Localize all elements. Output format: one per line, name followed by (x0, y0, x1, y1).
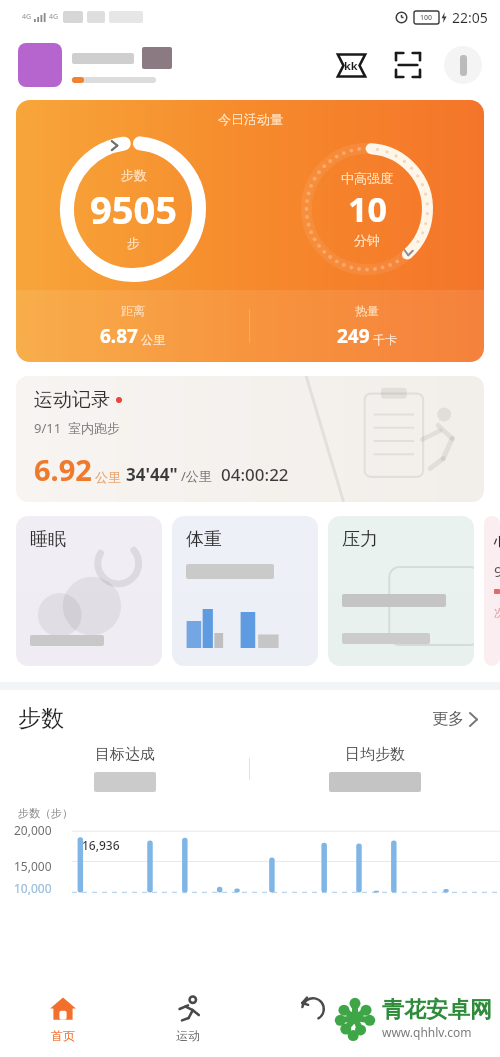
button[interactable]: KK rewards (330, 44, 372, 86)
staticText: 步数 (18, 704, 64, 733)
staticText: 22:05 (452, 8, 488, 27)
button[interactable]: 运动 (125, 979, 250, 1057)
staticText: 热量 (355, 303, 379, 318)
button[interactable]: Account (444, 46, 482, 84)
staticText: 距离 (121, 303, 145, 318)
button[interactable]: 压力 (328, 516, 474, 666)
staticText: 中高强度 (341, 170, 393, 186)
staticText: 04:00:22 (221, 463, 289, 486)
button[interactable]: Profile avatar (18, 43, 62, 87)
staticText: 次 (494, 606, 500, 620)
staticText: /公里 (181, 467, 212, 485)
staticText: 公里 (95, 469, 121, 485)
button[interactable]: 体重 (172, 516, 318, 666)
staticText: 4G (49, 12, 59, 22)
staticText: 运动 (176, 1028, 200, 1043)
button[interactable]: More (250, 979, 375, 1057)
staticText: 6.87 (100, 323, 138, 349)
staticText: 9/11 室内跑步 (34, 419, 120, 437)
staticText: 4G (22, 12, 32, 22)
staticText: 249 (337, 323, 370, 349)
staticText: 100 (420, 13, 433, 23)
staticText: 更多 (432, 709, 464, 729)
staticText: 首页 (51, 1028, 75, 1043)
button[interactable]: Scan (388, 45, 428, 85)
staticText: kk (344, 58, 358, 73)
staticText: 千卡 (373, 332, 397, 347)
staticText: 步数 (121, 167, 147, 183)
staticText: 分钟 (354, 232, 380, 248)
staticText: 34'44" (126, 463, 178, 486)
staticText: 目标达成 (95, 745, 155, 764)
staticText: 今日活动量 (218, 111, 283, 127)
button[interactable]: 更多 (428, 705, 482, 733)
staticText: 心 (494, 530, 500, 551)
button[interactable]: 心 (484, 516, 500, 666)
staticText: 9505 (90, 183, 177, 235)
staticText: 运动记录 (34, 388, 110, 412)
staticText: 睡眠 (30, 528, 66, 551)
staticText: 压力 (342, 528, 378, 551)
staticText: 体重 (186, 528, 222, 551)
staticText: 步 (127, 235, 140, 251)
button[interactable]: 睡眠 (16, 516, 162, 666)
button[interactable]: 运动记录 (16, 376, 484, 502)
staticText: 15,000 (14, 858, 52, 874)
staticText: 青花安卓网 (382, 996, 492, 1024)
staticText: www.qhhlv.com (382, 1024, 472, 1040)
staticText: 9 (494, 561, 500, 581)
staticText: 10,000 (14, 880, 52, 896)
staticText: 公里 (141, 332, 165, 347)
staticText: 6.92 (34, 450, 92, 489)
staticText: 10 (348, 186, 387, 232)
staticText: 16,936 (82, 837, 120, 853)
button[interactable]: 今日活动量 (16, 100, 484, 362)
button[interactable]: 首页 (0, 979, 125, 1057)
staticText: 步数（步） (18, 806, 73, 820)
staticText: 20,000 (14, 822, 52, 838)
staticText: 日均步数 (345, 745, 405, 764)
